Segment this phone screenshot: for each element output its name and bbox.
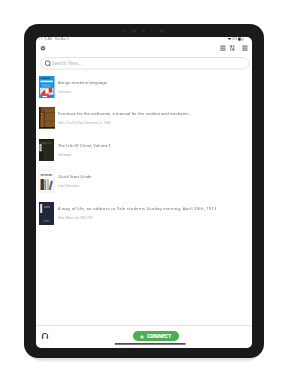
button[interactable]: CONNECT [133,331,179,341]
button[interactable]: A way of life; an address to Yale studen… [36,198,251,228]
staticText: 30% [232,37,238,41]
staticText: Furniture for the craftsman, a manual fo… [58,111,192,117]
staticText: John Schember [58,184,80,188]
staticText: CONNECT [147,333,172,340]
staticText: A way of life; an address to Yale studen… [58,206,217,212]
staticText: Unknown [58,90,72,94]
staticText: Search Here... [52,60,82,66]
button[interactable] [220,45,226,51]
button[interactable]: The Life Of Christ, Volume I [36,135,251,165]
staticText: The Life Of Christ, Volume I [58,143,111,149]
staticText: Osler, William, Sir, 1849-1919 [58,216,93,220]
button[interactable] [41,332,49,340]
button[interactable]: Search Here... [40,57,250,70]
staticText: Quick Start Guide [58,174,92,180]
staticText: Allen, Paul D. (Paul Dermont), b. 1888 [58,121,111,125]
button[interactable] [242,45,248,51]
button[interactable]: Amigo machine language [36,72,251,102]
button[interactable] [40,45,47,52]
button[interactable] [230,45,236,51]
button[interactable]: Quick Start Guide [36,166,251,196]
staticText: 11:15 AM Thu Mar 5 [39,37,69,41]
staticText: Amigo machine language [58,80,108,86]
button[interactable]: Furniture for the craftsman, a manual fo… [36,103,251,133]
staticText: Unknown [58,153,72,157]
